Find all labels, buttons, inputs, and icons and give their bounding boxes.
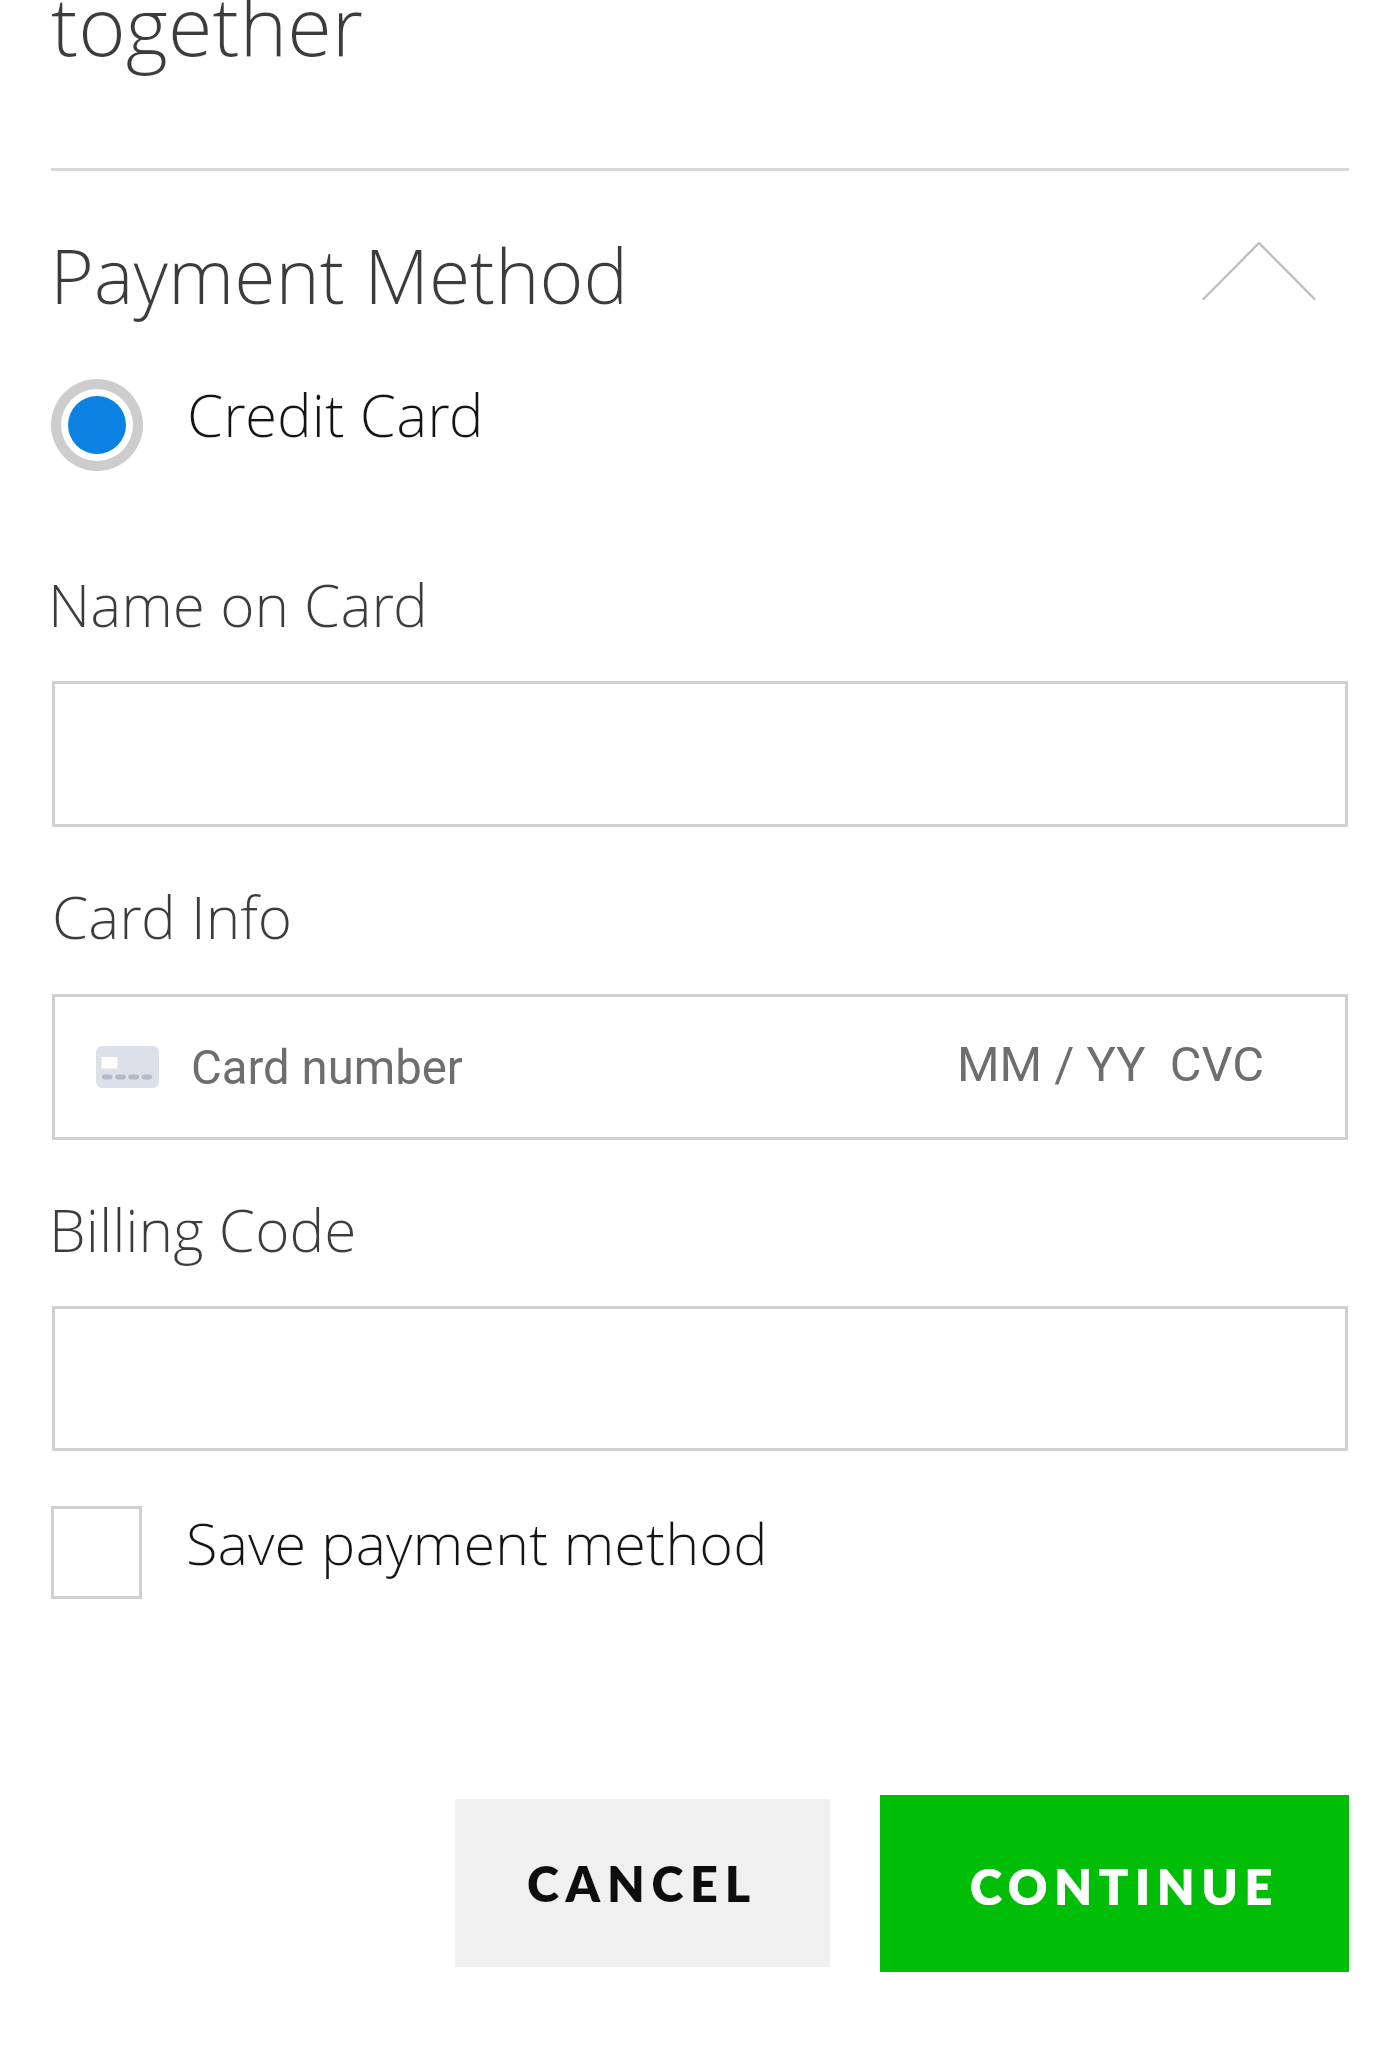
staticText: Name on Card (48, 564, 428, 644)
staticText: Billing Code (49, 1189, 357, 1269)
button[interactable]: CANCEL (455, 1799, 830, 1967)
button[interactable]: Card number, expiry and CVC input (52, 994, 1348, 1140)
staticText: Card number (191, 1040, 463, 1095)
button[interactable]: Name on Card input (52, 681, 1348, 827)
staticText: together (51, 0, 364, 79)
button[interactable]: CONTINUE (880, 1795, 1349, 1972)
staticText: Save payment method (186, 1503, 768, 1582)
button[interactable]: Credit Card (48, 376, 488, 472)
staticText: CONTINUE (970, 1857, 1280, 1915)
staticText: MM / YY CVC (957, 1036, 1265, 1093)
staticText: Credit Card (187, 374, 484, 454)
button[interactable]: Billing Code input (52, 1306, 1348, 1451)
staticText: Payment Method (50, 224, 629, 326)
button[interactable]: Payment Method (40, 222, 1350, 332)
staticText: Card Info (52, 876, 292, 956)
other: Collapse payment method section (1195, 232, 1323, 312)
button[interactable]: Save payment method (48, 1500, 778, 1604)
staticText: CANCEL (527, 1854, 757, 1912)
